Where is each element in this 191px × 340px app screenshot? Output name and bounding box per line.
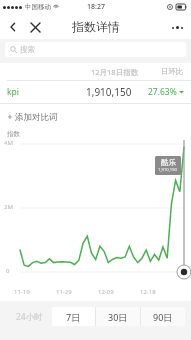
staticText: 90日 xyxy=(153,311,173,323)
staticText: 27.63% xyxy=(148,86,177,98)
staticText: 指数 xyxy=(7,130,20,138)
button[interactable]: kpi xyxy=(0,81,191,103)
staticText: 2M xyxy=(4,203,13,211)
staticText: 18:27 xyxy=(87,2,105,12)
button[interactable]: 添加对比词 xyxy=(0,108,191,126)
staticText: 0 xyxy=(6,267,10,275)
staticText: 1,910,150 xyxy=(158,167,178,173)
button[interactable]: 7日 xyxy=(52,307,95,326)
staticText: 4M xyxy=(4,139,13,147)
staticText: 搜索 xyxy=(20,45,35,54)
button[interactable]: More options xyxy=(167,17,187,37)
button[interactable]: Back xyxy=(3,17,23,37)
staticText: 12-18 xyxy=(140,288,156,296)
button[interactable]: 24小时 xyxy=(6,307,52,326)
staticText: 30日 xyxy=(108,311,128,323)
staticText: 24小时 xyxy=(16,311,43,323)
staticText: kpi xyxy=(7,86,19,98)
button[interactable]: 30日 xyxy=(96,307,140,326)
staticText: 日环比 xyxy=(161,67,184,76)
staticText: 11-29 xyxy=(56,288,72,296)
button[interactable]: 90日 xyxy=(141,307,185,326)
button[interactable]: Close xyxy=(25,17,45,37)
staticText: 1,910,150 xyxy=(86,85,132,99)
staticText: 11-19 xyxy=(14,288,30,296)
staticText: 添加对比词 xyxy=(15,112,58,123)
staticText: 中国移动 xyxy=(25,3,51,11)
staticText: 12-09 xyxy=(98,288,114,296)
staticText: 7日 xyxy=(66,311,81,323)
button[interactable]: 搜索 xyxy=(5,42,186,57)
staticText: 指数详情 xyxy=(72,19,120,34)
staticText: 12月18日指数 xyxy=(91,67,139,77)
staticText: 酷乐 xyxy=(161,158,176,167)
